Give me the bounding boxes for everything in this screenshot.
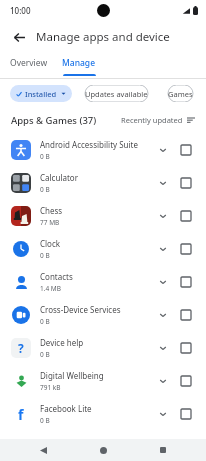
button[interactable]: Clock: [0, 232, 206, 265]
staticText: Manage: [62, 57, 96, 69]
staticText: Apps & Games (37): [11, 114, 97, 127]
button[interactable]: Digital Wellbeing: [0, 364, 206, 397]
button[interactable]: Select Contacts: [177, 273, 195, 291]
staticText: 0 B: [40, 317, 50, 326]
button[interactable]: Select Android Accessibility Suite: [177, 141, 195, 159]
button[interactable]: Installed: [10, 85, 72, 102]
button[interactable]: Recently updated: [121, 115, 195, 125]
button[interactable]: Expand: [153, 173, 173, 193]
button[interactable]: Expand: [153, 371, 173, 391]
staticText: 10:00: [10, 5, 31, 16]
staticText: 0 B: [40, 251, 50, 260]
button[interactable]: Manage: [62, 54, 96, 78]
staticText: Chess: [40, 205, 63, 216]
button[interactable]: Select Clock: [177, 240, 195, 258]
staticText: Facebook Lite: [40, 403, 92, 414]
button[interactable]: Overview: [10, 54, 48, 78]
staticText: Recently updated: [121, 115, 183, 125]
staticText: Manage apps and device: [36, 29, 170, 45]
button[interactable]: ?: [0, 331, 206, 364]
button[interactable]: Select Cross-Device Services: [177, 306, 195, 324]
button[interactable]: f: [0, 397, 206, 430]
staticText: Digital Wellbeing: [40, 370, 104, 381]
button[interactable]: Select Chess: [177, 207, 195, 225]
staticText: 77 MB: [40, 218, 60, 227]
staticText: 0 B: [40, 416, 50, 425]
staticText: Clock: [40, 238, 61, 249]
staticText: 0 B: [40, 350, 50, 359]
staticText: Calculator: [40, 172, 78, 183]
button[interactable]: Expand: [153, 404, 173, 424]
staticText: 0 B: [40, 152, 50, 161]
button[interactable]: Expand: [153, 140, 173, 160]
button[interactable]: Expand: [153, 338, 173, 358]
button[interactable]: Contacts: [0, 265, 206, 298]
button[interactable]: Select Facebook Lite: [177, 405, 195, 423]
button[interactable]: Expand: [153, 305, 173, 325]
staticText: f: [18, 405, 24, 424]
button[interactable]: Updates available: [78, 85, 155, 102]
button[interactable]: Chess: [0, 199, 206, 232]
staticText: Installed: [25, 89, 57, 99]
button[interactable]: Select Digital Wellbeing: [177, 372, 195, 390]
button[interactable]: Back: [26, 439, 60, 461]
button[interactable]: Select Calculator: [177, 174, 195, 192]
button[interactable]: Expand: [153, 206, 173, 226]
button[interactable]: Recent apps: [146, 439, 180, 461]
staticText: Overview: [10, 57, 48, 69]
button[interactable]: Select Device help: [177, 339, 195, 357]
button[interactable]: Back: [6, 24, 32, 50]
staticText: ?: [18, 340, 24, 356]
button[interactable]: Android Accessibility Suite: [0, 133, 206, 166]
staticText: Device help: [40, 337, 84, 348]
button[interactable]: Calculator: [0, 166, 206, 199]
staticText: Updates available: [85, 89, 148, 99]
staticText: 791 kB: [40, 383, 61, 392]
button[interactable]: Home: [86, 439, 120, 461]
button[interactable]: Cross-Device Services: [0, 298, 206, 331]
staticText: Cross-Device Services: [40, 304, 121, 315]
staticText: Contacts: [40, 271, 73, 282]
staticText: 1.4 MB: [40, 284, 61, 293]
button[interactable]: Expand: [153, 272, 173, 292]
button[interactable]: Expand: [153, 239, 173, 259]
staticText: 0 B: [40, 185, 50, 194]
button[interactable]: Games: [161, 85, 200, 102]
staticText: Android Accessibility Suite: [40, 139, 139, 150]
staticText: Games: [168, 89, 193, 99]
